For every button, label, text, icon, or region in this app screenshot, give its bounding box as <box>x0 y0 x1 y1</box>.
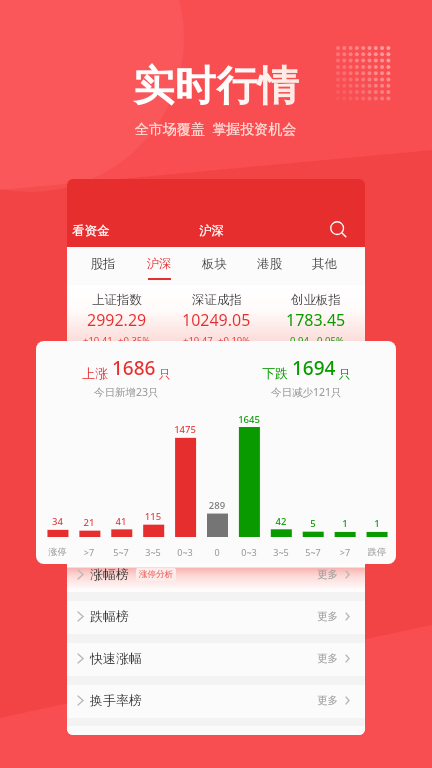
staticText: 更多 <box>317 610 338 623</box>
button[interactable]: 其他 <box>297 247 352 285</box>
staticText: 41 <box>105 515 137 528</box>
staticText: 涨停分析 <box>139 569 173 580</box>
staticText: 涨幅榜 <box>90 566 129 582</box>
button[interactable]: 沪深 <box>131 247 187 285</box>
button[interactable]: 创业板指 <box>266 285 365 341</box>
staticText: 1694 <box>292 355 336 381</box>
staticText: 10249.05 <box>182 309 251 331</box>
staticText: -0.94 <box>287 334 309 341</box>
button[interactable]: 看资金 <box>69 220 113 242</box>
staticText: 更多 <box>317 694 338 707</box>
staticText: 上证指数 <box>92 292 142 308</box>
staticText: 板块 <box>187 256 242 272</box>
staticText: 跌幅榜 <box>90 608 129 624</box>
staticText: 1 <box>329 517 361 530</box>
staticText: 全市场覆盖 掌握投资机会 <box>135 119 297 138</box>
button[interactable]: 股指 <box>75 247 131 285</box>
staticText: 涨停 <box>42 546 73 557</box>
staticText: 其他 <box>297 256 352 272</box>
staticText: 115 <box>137 510 169 523</box>
staticText: 2992.29 <box>87 309 147 331</box>
staticText: 0~3 <box>169 546 201 558</box>
button[interactable]: 跌幅榜 <box>67 592 365 634</box>
staticText: 实时行情 <box>133 61 299 113</box>
button[interactable]: 板块 <box>187 247 242 285</box>
staticText: +0.35% <box>118 334 151 341</box>
staticText: 1783.45 <box>286 309 346 331</box>
button[interactable]: 快速涨幅 <box>67 634 365 676</box>
staticText: 今日新增23只 <box>94 385 159 399</box>
staticText: 1 <box>361 517 393 530</box>
staticText: +19.47 <box>183 334 213 341</box>
staticText: 港股 <box>242 256 297 272</box>
staticText: 今日减少121只 <box>271 385 342 399</box>
staticText: >7 <box>329 546 361 558</box>
button[interactable]: 沪深 <box>196 220 227 242</box>
staticText: 3~5 <box>137 546 169 558</box>
button[interactable]: 港股 <box>242 247 297 285</box>
staticText: 5 <box>297 517 329 530</box>
staticText: 1475 <box>169 423 201 436</box>
staticText: -0.05% <box>314 334 344 341</box>
button[interactable]: 深证成指 <box>167 285 266 341</box>
staticText: 看资金 <box>72 223 110 239</box>
staticText: 深证成指 <box>192 292 242 308</box>
staticText: 1645 <box>233 413 265 426</box>
button[interactable]: 上证指数 <box>67 285 167 341</box>
staticText: 跌停 <box>361 546 393 557</box>
staticText: 21 <box>73 516 105 529</box>
button[interactable]: 涨幅榜 <box>67 550 365 592</box>
staticText: 5~7 <box>105 546 137 558</box>
staticText: 创业板指 <box>291 292 341 308</box>
staticText: 股指 <box>75 256 131 272</box>
staticText: 5~7 <box>297 546 329 558</box>
button[interactable]: Search <box>325 216 351 242</box>
staticText: 下跌 <box>262 365 288 381</box>
staticText: +0.19% <box>218 334 251 341</box>
staticText: >7 <box>73 546 105 558</box>
staticText: 上涨 <box>82 365 108 381</box>
staticText: 只 <box>159 366 171 381</box>
staticText: 快速涨幅 <box>90 650 142 666</box>
staticText: 沪深 <box>131 256 187 272</box>
staticText: +10.41 <box>83 334 113 341</box>
staticText: 3~5 <box>265 546 297 558</box>
staticText: 更多 <box>317 652 338 665</box>
staticText: 0~3 <box>233 546 265 558</box>
staticText: 只 <box>339 366 351 381</box>
staticText: 42 <box>265 515 297 528</box>
staticText: 34 <box>42 515 73 528</box>
staticText: 0 <box>201 546 233 558</box>
staticText: 沪深 <box>199 223 224 239</box>
button[interactable]: 换手率榜 <box>67 676 365 718</box>
staticText: 更多 <box>317 568 338 581</box>
staticText: 换手率榜 <box>90 692 142 708</box>
staticText: 289 <box>201 499 233 512</box>
staticText: 1686 <box>112 355 156 381</box>
